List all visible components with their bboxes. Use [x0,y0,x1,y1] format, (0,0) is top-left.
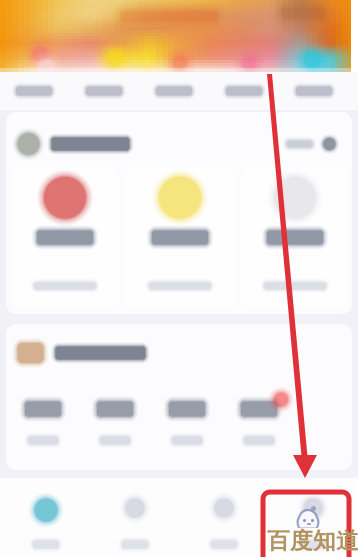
button[interactable] [12,124,212,164]
button[interactable] [152,396,222,472]
button[interactable] [126,168,234,308]
button[interactable]: Tab 4 [273,492,353,557]
button[interactable]: More [274,124,348,164]
button[interactable]: Tab 3 [184,492,264,557]
button[interactable] [76,74,132,108]
button[interactable] [241,168,349,308]
button[interactable] [286,74,342,108]
button[interactable] [12,333,222,373]
button[interactable]: Tab 2 [95,492,175,557]
button[interactable] [146,74,202,108]
button[interactable] [11,168,119,308]
button[interactable] [224,396,294,472]
button[interactable]: Tab 1 [6,492,86,557]
button[interactable] [8,396,78,472]
button[interactable] [6,74,62,108]
staticText: 百度知道 [267,527,358,555]
button[interactable] [80,396,150,472]
button[interactable] [216,74,272,108]
